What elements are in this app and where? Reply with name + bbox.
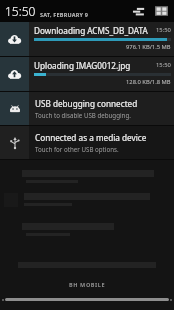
button[interactable]: Close notification shade: [5, 298, 169, 301]
staticText: Touch to disable USB debugging.: [35, 111, 131, 119]
button[interactable]: Downloading ACMS_DB_DATA: [0, 22, 174, 56]
button[interactable]: USB debugging connected: [0, 92, 174, 125]
staticText: USB debugging connected: [35, 98, 138, 109]
staticText: Downloading ACMS_DB_DATA: [34, 25, 148, 36]
button[interactable]: Uploading IMAG0012.jpg: [0, 57, 174, 91]
staticText: SAT, FEBRUARY 9: [40, 11, 89, 18]
button[interactable]: Connected as a media device: [0, 126, 174, 159]
staticText: Connected as a media device: [35, 132, 147, 143]
staticText: 976.1 KB/1.5 MB: [126, 43, 171, 51]
staticText: 15:50: [156, 26, 171, 34]
staticText: BH MOBILE: [69, 281, 106, 288]
staticText: 128.0 KB/1.8 MB: [126, 78, 171, 86]
staticText: Touch for other USB options.: [35, 145, 119, 153]
staticText: Uploading IMAG0012.jpg: [34, 60, 131, 71]
staticText: 15:50: [5, 3, 36, 19]
staticText: 15:50: [156, 61, 171, 69]
